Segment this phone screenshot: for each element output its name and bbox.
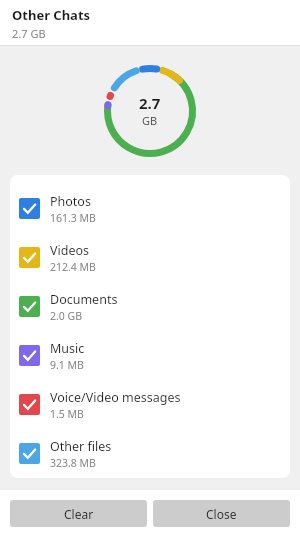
button[interactable]: Checked <box>10 331 290 380</box>
staticText: Music <box>50 340 85 357</box>
staticText: Other files <box>50 438 112 455</box>
staticText: 161.3 MB <box>50 211 96 225</box>
staticText: Clear <box>64 506 94 522</box>
button[interactable]: Checked <box>10 380 290 429</box>
staticText: Documents <box>50 291 118 308</box>
staticText: Other Chats <box>12 6 91 24</box>
staticText: 323.8 MB <box>50 456 96 470</box>
button[interactable]: Clear <box>10 500 147 527</box>
staticText: Voice/Video messages <box>50 389 181 406</box>
button[interactable]: Checked <box>10 282 290 331</box>
staticText: 1.5 MB <box>50 407 84 421</box>
staticText: 212.4 MB <box>50 260 96 274</box>
button[interactable]: Close <box>153 500 290 527</box>
staticText: 2.0 GB <box>50 309 83 323</box>
other: Checked <box>19 198 40 219</box>
staticText: Close <box>206 506 237 522</box>
button[interactable]: Checked <box>10 429 290 478</box>
other: Checked <box>19 345 40 366</box>
staticText: 2.7 GB <box>12 26 46 41</box>
other: Checked <box>19 394 40 415</box>
staticText: Videos <box>50 242 90 259</box>
button[interactable]: Checked <box>10 233 290 282</box>
staticText: 9.1 MB <box>50 358 84 372</box>
staticText: GB <box>142 113 158 128</box>
other: Checked <box>19 443 40 464</box>
other: Checked <box>19 296 40 317</box>
other: Checked <box>19 247 40 268</box>
staticText: Photos <box>50 193 91 210</box>
button[interactable]: Checked <box>10 184 290 233</box>
staticText: 2.7 <box>139 93 161 113</box>
